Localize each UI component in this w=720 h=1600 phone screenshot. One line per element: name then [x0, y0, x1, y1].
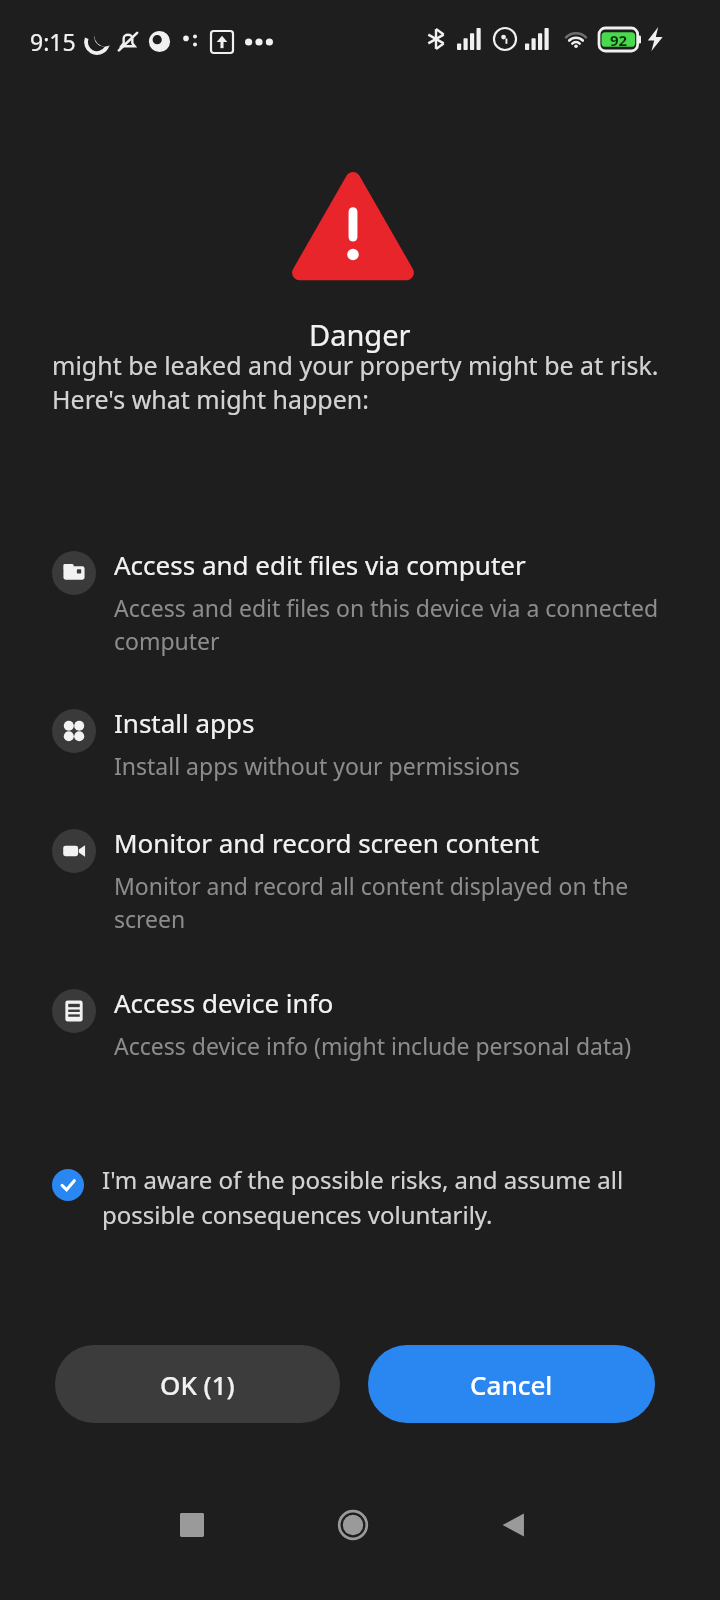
- staticText: OK (1): [160, 1367, 235, 1402]
- staticText: Install apps without your permissions: [114, 750, 520, 781]
- button[interactable]: Back: [453, 1480, 573, 1570]
- staticText: Monitor and record all content displayed…: [114, 870, 668, 935]
- button[interactable]: Access device info: [40, 981, 680, 1065]
- button[interactable]: Recent apps: [132, 1480, 252, 1570]
- staticText: 92: [610, 30, 628, 50]
- staticText: Access device info (might include person…: [114, 1030, 632, 1061]
- staticText: Monitor and record screen content: [114, 825, 540, 860]
- button[interactable]: Cancel: [368, 1345, 655, 1423]
- button[interactable]: Access and edit files via computer: [40, 543, 680, 661]
- button[interactable]: I'm aware of the possible risks, and ass…: [40, 1155, 670, 1239]
- button[interactable]: Monitor and record screen content: [40, 821, 680, 939]
- button[interactable]: Home: [293, 1480, 413, 1570]
- staticText: Install apps: [114, 705, 255, 740]
- button[interactable]: Install apps: [40, 701, 680, 785]
- staticText: 9:15: [30, 26, 76, 57]
- staticText: Cancel: [470, 1367, 553, 1402]
- staticText: Access device info: [114, 985, 334, 1020]
- staticText: Access and edit files via computer: [114, 547, 526, 582]
- staticText: Danger: [309, 315, 411, 354]
- button[interactable]: OK (1): [55, 1345, 340, 1423]
- staticText: might be leaked and your property might …: [52, 348, 672, 417]
- staticText: Access and edit files on this device via…: [114, 592, 668, 657]
- staticText: I'm aware of the possible risks, and ass…: [102, 1163, 658, 1231]
